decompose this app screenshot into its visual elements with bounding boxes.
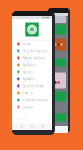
staticText: Home xyxy=(23,42,31,46)
button[interactable]: Manage Address xyxy=(12,55,52,62)
button[interactable]: Home xyxy=(12,41,52,48)
staticText: Shop by Category xyxy=(23,49,47,53)
button[interactable]: Rate Us xyxy=(12,90,52,97)
button[interactable]: My Wallet xyxy=(12,76,52,83)
staticText: Manage Address xyxy=(23,56,45,60)
button[interactable]: Customer Support xyxy=(12,97,52,104)
button[interactable]: Home xyxy=(31,125,33,128)
staticText: Customer Support xyxy=(23,98,48,102)
button[interactable]: App logo xyxy=(25,22,39,36)
staticText: My List xyxy=(23,70,31,74)
staticText: v 1.0.2 xyxy=(17,117,27,121)
button[interactable]: Send Feedback xyxy=(12,83,52,90)
button[interactable]: My List xyxy=(12,69,52,76)
staticText: Logout xyxy=(23,105,33,109)
staticText: Send Feedback xyxy=(23,84,43,88)
button[interactable]: Shop by Category xyxy=(12,48,52,55)
button[interactable]: My Orders xyxy=(12,62,52,69)
staticText: Rate Us xyxy=(23,91,33,95)
button[interactable]: Back xyxy=(20,125,23,128)
staticText: My Wallet xyxy=(23,77,35,81)
staticText: My Orders xyxy=(23,63,36,67)
button[interactable]: Logout xyxy=(12,104,52,111)
button[interactable]: Recents xyxy=(42,125,44,128)
